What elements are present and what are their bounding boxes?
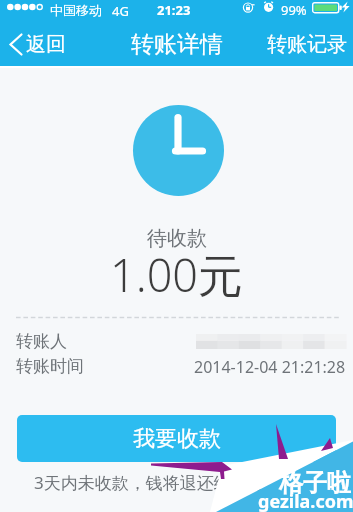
staticText: 4G [112, 2, 129, 20]
staticText: 转账时间 [16, 356, 84, 376]
staticText: 转账详情 [131, 30, 223, 59]
staticText: 转账人 [16, 331, 67, 351]
staticText: 转账记录 [267, 32, 347, 57]
button[interactable]: 我要收款 [17, 415, 336, 462]
button[interactable]: 返回 [9, 32, 66, 57]
staticText: 3天内未收款，钱将退还给对方 [34, 471, 265, 494]
staticText: 返回 [26, 32, 66, 57]
staticText: 待收款 [147, 226, 207, 251]
button[interactable]: 转账记录 [267, 32, 347, 57]
staticText: 21:23 [157, 1, 191, 19]
staticText: gezila.com [258, 489, 353, 512]
staticText: 1.00元 [110, 244, 244, 305]
other: 返回 [9, 33, 23, 56]
staticText: 2014-12-04 21:21:28 [194, 356, 346, 376]
staticText: 我要收款 [133, 425, 221, 453]
staticText: 格子啦 [279, 468, 351, 498]
staticText: 中国移动 [50, 2, 102, 18]
staticText: 99% [281, 1, 307, 19]
